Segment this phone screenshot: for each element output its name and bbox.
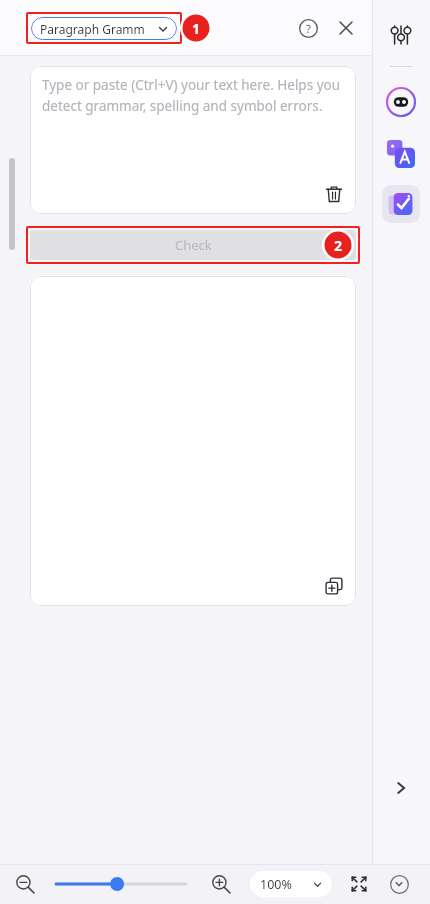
staticText: Type or paste (Ctrl+V) your text here. H… xyxy=(42,76,342,115)
staticText: 2 xyxy=(334,236,343,255)
button[interactable] xyxy=(56,875,186,893)
button[interactable]: Fit to screen xyxy=(346,871,372,897)
staticText: Check xyxy=(175,236,212,254)
button[interactable]: Zoom out xyxy=(12,871,38,897)
button[interactable]: Type or paste (Ctrl+V) your text here. H… xyxy=(30,66,356,214)
button[interactable]: Expand panel xyxy=(385,772,417,804)
button[interactable]: Check xyxy=(30,230,356,260)
button[interactable]: Settings xyxy=(386,20,416,50)
button[interactable]: Translate xyxy=(384,137,418,171)
button[interactable]: 100% xyxy=(250,871,332,897)
button[interactable]: Delete text xyxy=(322,182,346,206)
button[interactable]: Grammar check xyxy=(382,185,420,223)
button[interactable]: Copy result xyxy=(322,574,346,598)
staticText: 1 xyxy=(192,19,201,38)
button[interactable]: Help xyxy=(296,16,320,40)
staticText: 100% xyxy=(260,876,292,893)
button[interactable]: Paragraph Gramm xyxy=(31,17,177,40)
button[interactable]: Copy result xyxy=(30,276,356,606)
button[interactable]: Assistant xyxy=(384,85,418,119)
button[interactable]: More view options xyxy=(386,871,412,897)
button[interactable]: Close xyxy=(334,16,358,40)
staticText: ? xyxy=(306,21,311,36)
button[interactable]: Zoom in xyxy=(208,871,234,897)
staticText: Paragraph Gramm xyxy=(40,21,145,37)
